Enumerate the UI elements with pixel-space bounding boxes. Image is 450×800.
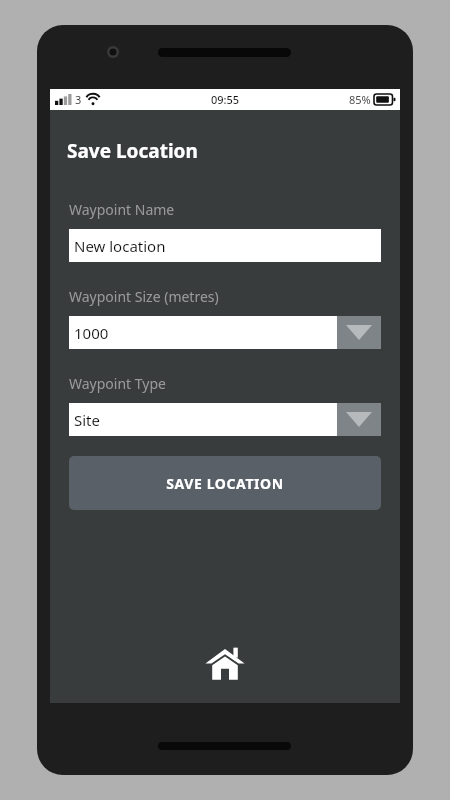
staticText: 3 [75, 92, 82, 107]
button[interactable]: Site [69, 403, 381, 436]
button[interactable]: SAVE LOCATION [69, 456, 381, 510]
staticText: SAVE LOCATION [166, 474, 284, 493]
staticText: 1000 [74, 323, 109, 343]
staticText: Site [74, 410, 100, 430]
button[interactable]: New location [69, 229, 381, 262]
button[interactable]: 1000 [69, 316, 381, 349]
staticText: 09:55 [211, 92, 240, 107]
staticText: Waypoint Size (metres) [69, 287, 219, 306]
staticText: Save Location [67, 138, 198, 164]
staticText: New location [74, 236, 166, 256]
staticText: Waypoint Name [69, 200, 175, 219]
button[interactable]: Home [201, 639, 249, 687]
staticText: 85% [349, 92, 371, 107]
staticText: Waypoint Type [69, 374, 166, 393]
